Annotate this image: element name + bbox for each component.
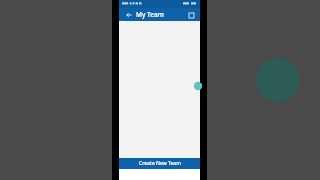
button[interactable]: Options <box>186 10 196 20</box>
staticText: Create New Team <box>139 160 181 167</box>
button[interactable]: Create New Team <box>119 158 200 169</box>
button[interactable]: Back <box>124 10 133 19</box>
other: Floating action <box>119 0 200 180</box>
staticText: My Team <box>136 10 164 19</box>
